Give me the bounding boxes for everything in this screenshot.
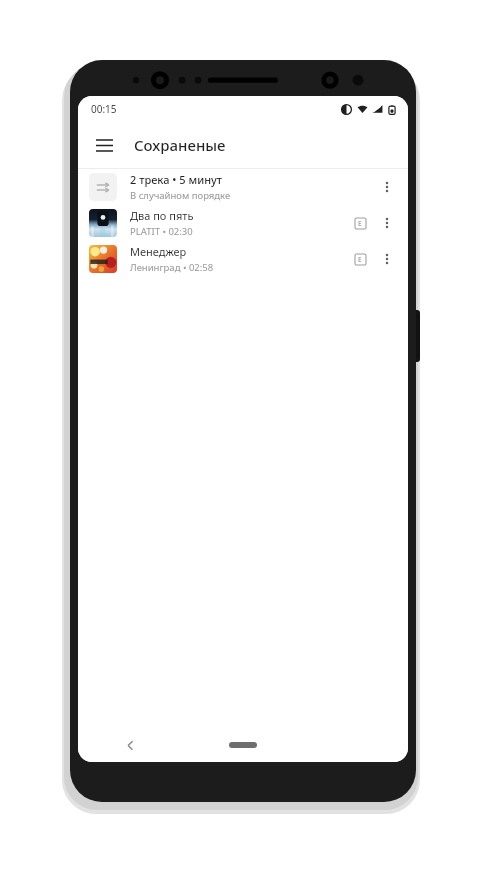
staticText: PLATIT • 02:30 [130, 225, 193, 238]
button[interactable]: Домой [221, 737, 265, 753]
button[interactable]: Ещё [374, 246, 400, 272]
staticText: E [358, 255, 362, 264]
button[interactable]: Меню [86, 127, 122, 163]
button[interactable]: Два по пять [78, 205, 408, 241]
button[interactable]: Назад [116, 731, 144, 759]
staticText: Ленинград • 02:58 [130, 261, 214, 274]
staticText: Два по пять [130, 208, 194, 223]
button[interactable]: Ещё [374, 210, 400, 236]
staticText: Сохраненые [134, 135, 226, 155]
staticText: В случайном порядке [130, 189, 231, 202]
staticText: E [358, 219, 362, 228]
button[interactable]: Менеджер [78, 241, 408, 277]
button[interactable]: 2 трека • 5 минут [78, 169, 408, 205]
staticText: 2 трека • 5 минут [130, 172, 223, 187]
staticText: Менеджер [130, 244, 187, 259]
button[interactable]: Ещё [374, 174, 400, 200]
staticText: 00:15 [91, 102, 117, 116]
